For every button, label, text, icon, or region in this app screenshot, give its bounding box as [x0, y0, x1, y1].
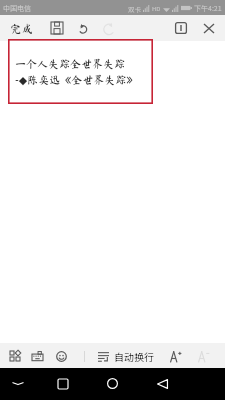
- staticText: -◆陈奕迅《全世界失踪》: [15, 74, 138, 87]
- button[interactable]: Decrease font size: [194, 345, 214, 367]
- staticText: 双卡: [128, 4, 141, 13]
- staticText: 一个人失踪全世界失踪: [15, 58, 125, 69]
- button[interactable]: 自动换行: [98, 349, 154, 363]
- staticText: HD: [152, 4, 161, 13]
- button[interactable]: Recents: [52, 373, 73, 394]
- button[interactable]: Close: [198, 17, 219, 39]
- staticText: 中国电信: [3, 3, 31, 13]
- button[interactable]: 完成: [4, 16, 38, 40]
- button[interactable]: Increase font size: [166, 345, 186, 367]
- staticText: 下午4:21: [194, 3, 222, 13]
- button[interactable]: Emoji: [51, 345, 72, 367]
- staticText: 自动换行: [114, 349, 154, 363]
- button[interactable]: Home: [102, 373, 123, 394]
- button[interactable]: Hide keyboard: [7, 373, 28, 394]
- button[interactable]: Keyboard: [27, 345, 48, 367]
- button[interactable]: Undo: [72, 17, 93, 39]
- staticText: 完成: [10, 23, 33, 34]
- button[interactable]: Split screen: [170, 17, 191, 39]
- button[interactable]: Back: [152, 373, 173, 394]
- button[interactable]: Apps: [4, 345, 25, 367]
- button[interactable]: Save: [46, 17, 67, 39]
- button[interactable]: Redo: [98, 17, 119, 39]
